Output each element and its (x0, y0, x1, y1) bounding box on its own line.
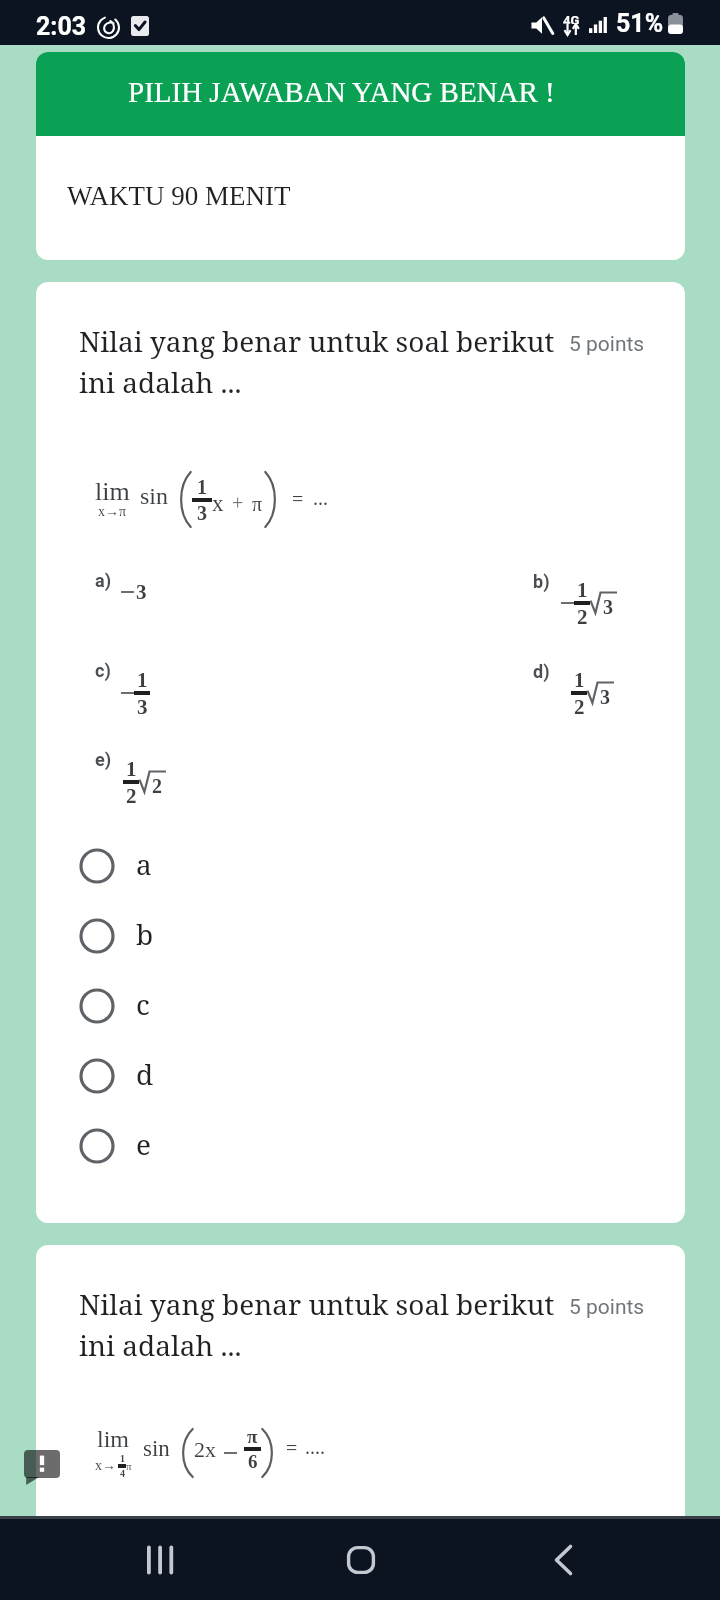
button[interactable]: d (36, 1041, 685, 1111)
staticText: x→π (98, 504, 127, 520)
staticText: 2x (194, 1437, 216, 1461)
staticText: .... (305, 1436, 325, 1458)
button[interactable]: b (36, 901, 685, 971)
staticText: = (292, 488, 304, 510)
staticText: b (136, 915, 154, 953)
button[interactable]: a (36, 831, 685, 901)
staticText: 1 (197, 476, 207, 498)
staticText: e) (95, 749, 112, 770)
staticText: 1 (137, 668, 148, 691)
staticText: + (232, 492, 244, 514)
staticText: c) (95, 660, 111, 681)
staticText: 3 (600, 686, 610, 708)
staticText: ini adalah ... (79, 363, 242, 401)
staticText: ini adalah ... (79, 1326, 242, 1364)
staticText: 51% (616, 9, 664, 38)
staticText: 1 (574, 668, 585, 691)
staticText: PILIH JAWABAN YANG BENAR ! (128, 76, 555, 108)
staticText: d (136, 1055, 154, 1093)
staticText: 2 (574, 695, 585, 718)
staticText: 2 (577, 605, 588, 628)
staticText: 4 (120, 1468, 125, 1479)
staticText: 1 (120, 1453, 125, 1464)
staticText: 1 (126, 757, 137, 780)
staticText: π (126, 1460, 132, 1472)
button[interactable]: Back (518, 1535, 608, 1585)
button[interactable]: Recent apps (116, 1535, 206, 1585)
staticText: lim (95, 477, 130, 506)
staticText: 3 (603, 596, 613, 618)
button[interactable]: Home (316, 1535, 406, 1585)
staticText: sin (143, 1436, 170, 1461)
staticText: WAKTU 90 MENIT (67, 181, 291, 211)
button[interactable]: c (36, 971, 685, 1041)
staticText: Nilai yang benar untuk soal berikut (79, 322, 555, 360)
staticText: 3 (197, 502, 207, 524)
staticText: x (212, 491, 224, 516)
staticText: 2 (126, 784, 137, 807)
staticText: c (136, 985, 150, 1023)
staticText: e (136, 1125, 151, 1163)
staticText: a (136, 845, 152, 883)
staticText: a) (95, 570, 111, 591)
staticText: ... (313, 487, 328, 509)
staticText: 6 (248, 1451, 258, 1472)
staticText: d) (533, 661, 550, 682)
button[interactable]: Report a problem (24, 1450, 60, 1485)
staticText: = (286, 1437, 298, 1459)
staticText: Nilai yang benar untuk soal berikut (79, 1285, 555, 1323)
staticText: sin (140, 483, 169, 510)
staticText: 2 (152, 775, 162, 797)
staticText: 3 (136, 580, 147, 603)
staticText: 3 (137, 695, 148, 718)
staticText: b) (533, 571, 550, 592)
staticText: 1 (577, 578, 588, 601)
staticText: lim (97, 1426, 130, 1453)
staticText: π (252, 493, 263, 515)
staticText: 5 points (569, 1295, 645, 1320)
staticText: x→ (95, 1458, 116, 1474)
staticText: π (247, 1426, 258, 1447)
button[interactable]: e (36, 1111, 685, 1181)
staticText: 4G (563, 13, 580, 24)
staticText: 2:03 (36, 12, 87, 41)
staticText: 5 points (569, 332, 645, 357)
